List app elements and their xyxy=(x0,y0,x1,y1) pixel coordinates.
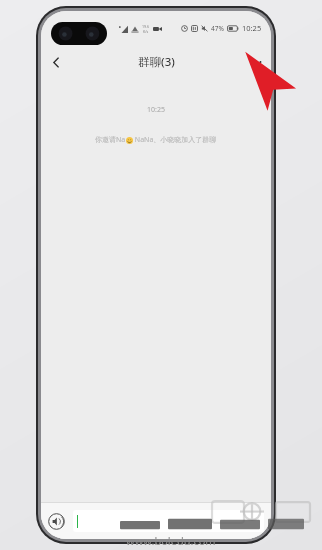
staticText: NaNa、小晓晓加入了群聊 xyxy=(133,135,217,145)
staticText: 10:25 xyxy=(242,23,262,33)
button[interactable] xyxy=(73,510,264,532)
button[interactable]: More options xyxy=(241,47,271,77)
staticText: 你邀请Na xyxy=(95,135,126,145)
staticText: www.boledu.com xyxy=(126,533,216,548)
button[interactable]: Back xyxy=(41,47,71,77)
button[interactable]: Voice input xyxy=(48,513,65,530)
staticText: 19.6 xyxy=(142,24,150,29)
staticText: 47% xyxy=(211,24,224,33)
staticText: 群聊(3) xyxy=(138,54,175,70)
staticText: K/s xyxy=(143,29,149,34)
staticText: 10:25 xyxy=(147,105,165,115)
